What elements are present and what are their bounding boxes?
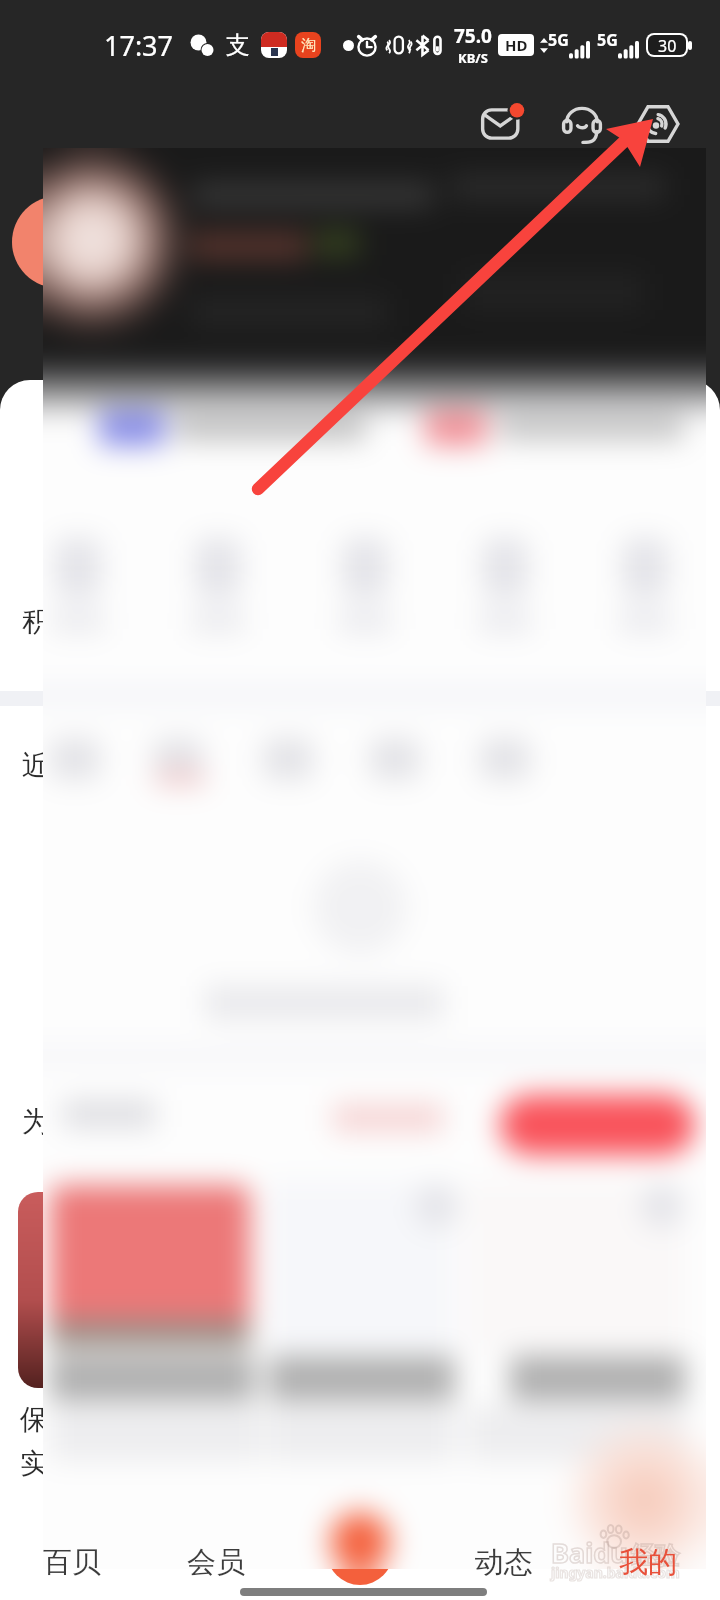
staticText: 我的 (619, 1544, 677, 1581)
staticText: 百贝 (43, 1544, 101, 1581)
button[interactable]: 会员 (164, 1544, 268, 1600)
staticText: jingyan.baidu.com (551, 1563, 680, 1582)
button[interactable]: Scan (626, 92, 690, 156)
staticText: 17:37 (104, 27, 174, 64)
staticText: 保险 (20, 1402, 76, 1437)
staticText: Baidu (551, 1534, 628, 1571)
button[interactable]: 百贝 (20, 1544, 124, 1600)
staticText: 30 (658, 35, 677, 55)
staticText: 支 (226, 30, 250, 60)
staticText: 近期 (22, 748, 78, 783)
staticText: HD (505, 35, 528, 55)
staticText: 经验 (631, 1541, 679, 1571)
staticText: 5G (597, 29, 618, 51)
button[interactable]: 动态 (452, 1544, 556, 1600)
staticText: 会员 (187, 1544, 245, 1581)
staticText: 为你 (22, 1104, 78, 1139)
button[interactable]: 我的 (596, 1544, 700, 1600)
staticText: KB/S (458, 49, 488, 67)
staticText: 5G (548, 29, 569, 51)
staticText: 淘 (301, 36, 316, 55)
button[interactable]: Customer service (550, 92, 614, 156)
staticText: 积分 (22, 604, 78, 639)
button[interactable]: Messages (470, 92, 534, 156)
staticText: 动态 (475, 1544, 533, 1581)
staticText: 实惠 (20, 1446, 76, 1481)
staticText: 75.0 (454, 23, 492, 49)
